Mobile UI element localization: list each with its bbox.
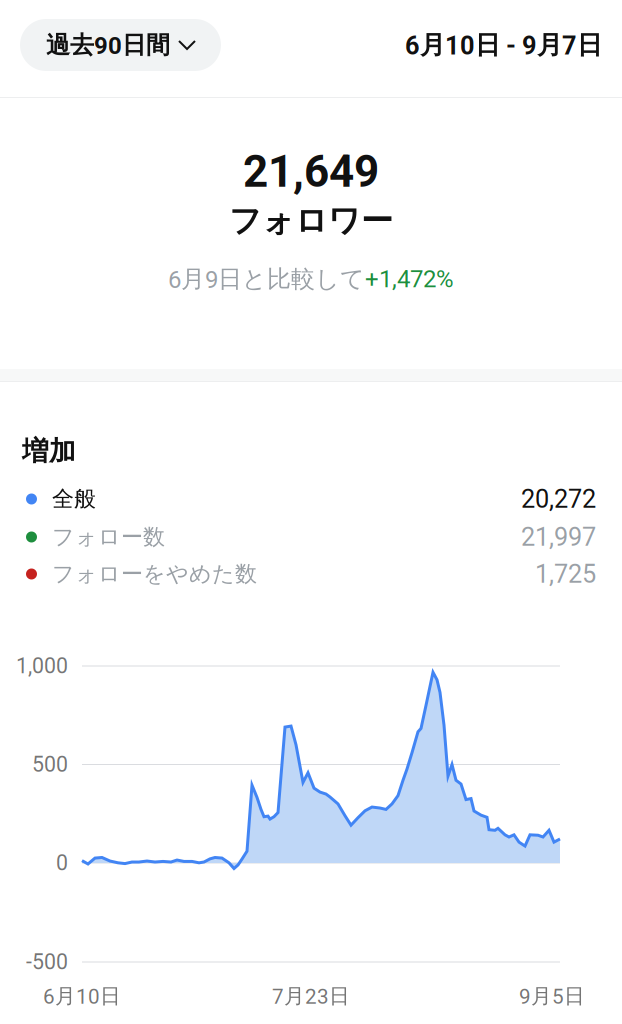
- staticText: 増加: [22, 434, 76, 468]
- staticText: 20,272: [521, 484, 596, 514]
- staticText: -500: [26, 949, 68, 974]
- staticText: 全般: [52, 485, 96, 513]
- staticText: フォローをやめた数: [52, 560, 257, 588]
- staticText: 9月5日: [519, 983, 585, 1009]
- staticText: 1,725: [535, 559, 596, 589]
- button[interactable]: 過去90日間: [20, 19, 221, 71]
- staticText: 過去90日間: [46, 30, 170, 60]
- staticText: 21,649: [243, 146, 379, 198]
- staticText: 7月23日: [272, 983, 350, 1009]
- staticText: 0: [56, 850, 68, 875]
- staticText: 6月10日: [43, 983, 121, 1009]
- staticText: 6月10日 - 9月7日: [405, 29, 602, 61]
- staticText: 1,000: [16, 653, 68, 678]
- staticText: +1,472%: [365, 265, 454, 293]
- staticText: フォロー数: [52, 523, 165, 551]
- staticText: フォロワー: [229, 201, 393, 241]
- staticText: 6月9日と比較して: [168, 264, 365, 294]
- staticText: 21,997: [521, 522, 596, 552]
- staticText: 500: [32, 752, 68, 777]
